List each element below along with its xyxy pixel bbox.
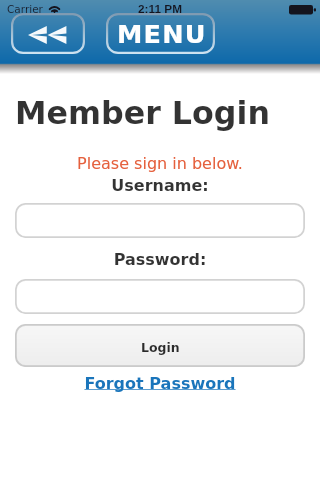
staticText: Username: [0,176,320,195]
button[interactable]: Forgot Password [0,374,320,393]
button[interactable]: MENU [106,13,215,54]
staticText: Carrier [7,3,43,15]
staticText: Member Login [15,95,270,132]
staticText: Please sign in below. [0,154,320,173]
button[interactable] [15,203,305,238]
button[interactable]: Back [11,13,85,54]
button[interactable] [15,279,305,314]
staticText: MENU [117,19,207,49]
staticText: Password: [0,250,320,269]
staticText: 2:11 PM [0,2,320,15]
staticText: Login [141,340,180,355]
button[interactable]: Login [15,324,305,367]
